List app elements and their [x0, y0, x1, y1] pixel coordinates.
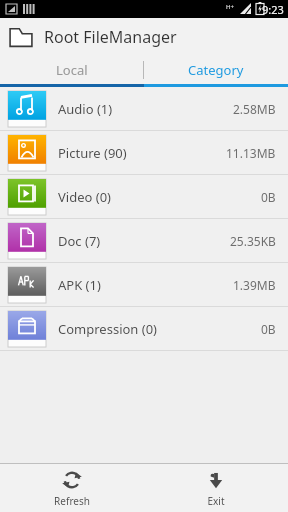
staticText: Audio (1): [58, 100, 233, 118]
staticText: 0B: [261, 189, 276, 205]
staticText: Refresh: [54, 494, 90, 508]
staticText: 0B: [261, 321, 276, 337]
button[interactable]: Refresh: [0, 464, 144, 512]
button[interactable]: Doc (7): [0, 219, 288, 263]
staticText: Doc (7): [58, 232, 230, 250]
staticText: 11.13MB: [226, 145, 276, 161]
staticText: Category: [188, 61, 244, 79]
button[interactable]: App icon: [0, 18, 288, 56]
button[interactable]: Video (0): [0, 175, 288, 219]
staticText: 1.39MB: [233, 277, 276, 293]
staticText: 9:23: [262, 2, 284, 17]
staticText: 2.58MB: [233, 101, 276, 117]
staticText: Root FileManager: [44, 26, 177, 48]
button[interactable]: APK (1): [0, 263, 288, 307]
staticText: Video (0): [58, 188, 261, 206]
staticText: H+: [226, 3, 234, 11]
button[interactable]: Exit: [144, 464, 288, 512]
other: App icon: [8, 24, 34, 50]
button[interactable]: Category: [144, 56, 288, 84]
button[interactable]: Audio (1): [0, 87, 288, 131]
button[interactable]: Local: [0, 56, 143, 84]
button[interactable]: Compression (0): [0, 307, 288, 351]
staticText: 25.35KB: [230, 233, 276, 249]
button[interactable]: Picture (90): [0, 131, 288, 175]
staticText: APK (1): [58, 276, 233, 294]
staticText: Exit: [207, 494, 225, 508]
staticText: Local: [56, 61, 88, 79]
staticText: Picture (90): [58, 144, 226, 162]
staticText: Compression (0): [58, 320, 261, 338]
